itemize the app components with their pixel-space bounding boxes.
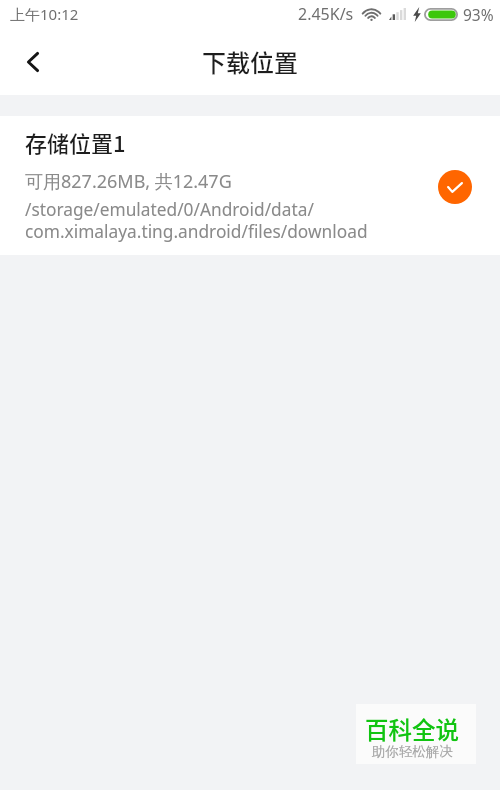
staticText: /storage/emulated/0/Android/data/ com.xi… [25,198,368,243]
staticText: 上午10:12 [10,4,79,24]
button[interactable]: Selected storage location [438,170,472,204]
staticText: 下载位置 [202,44,298,79]
staticText: 百科全说 [365,712,459,746]
button[interactable]: Back [0,28,56,95]
staticText: 93% [463,4,494,25]
staticText: 可用827.26MB, 共12.47G [25,169,232,194]
staticText: 助你轻松解决 [372,743,453,760]
button[interactable]: 存储位置1 [0,116,500,255]
staticText: 2.45K/s [298,3,354,25]
staticText: 存储位置1 [25,126,126,158]
